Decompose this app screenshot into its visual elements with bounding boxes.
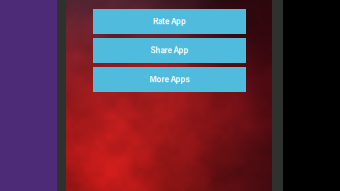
button[interactable]: More Apps (93, 67, 246, 92)
staticText: More Apps (149, 75, 189, 84)
staticText: Rate App (153, 17, 186, 26)
staticText: Share App (150, 46, 188, 55)
button[interactable]: Share App (93, 38, 246, 63)
button[interactable]: Rate App (93, 9, 246, 34)
